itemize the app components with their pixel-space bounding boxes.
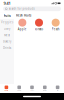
button[interactable]: Me	[51, 85, 64, 91]
button[interactable]: Bakery	[0, 38, 14, 45]
staticText: Deals	[43, 90, 47, 91]
staticText: Fresh Fruits	[16, 14, 31, 17]
button[interactable]: Veggies	[0, 19, 14, 25]
staticText: Fruits	[3, 14, 10, 18]
staticText: Me	[57, 90, 59, 91]
button[interactable]: Deals	[38, 85, 51, 91]
button[interactable]: Cart	[26, 85, 38, 91]
staticText: Peach	[52, 27, 60, 31]
button[interactable]: Search for products	[0, 6, 64, 11]
staticText: Dairy	[4, 27, 10, 30]
button[interactable]: Drinks	[0, 45, 14, 51]
button[interactable]: Fruits	[0, 13, 14, 19]
button[interactable]: Dairy	[0, 25, 14, 32]
button[interactable]: Shop	[13, 85, 26, 91]
staticText: Bakery	[3, 40, 11, 43]
button[interactable]: Apple	[14, 19, 31, 31]
button[interactable]: Peach	[47, 19, 64, 31]
staticText: Tomato	[34, 27, 43, 31]
button[interactable]: Meat	[0, 32, 14, 38]
staticText: 9:41	[3, 1, 10, 6]
staticText: Cart	[30, 90, 33, 91]
staticText: Drinks	[3, 46, 11, 50]
staticText: Veggies	[1, 20, 13, 24]
staticText: Shop	[17, 90, 21, 91]
button[interactable]: Tomato	[31, 19, 47, 31]
staticText: Apple	[18, 27, 27, 31]
staticText: Search for products	[9, 7, 35, 10]
staticText: Home	[4, 90, 8, 91]
button[interactable]: Home	[0, 85, 13, 91]
staticText: Meat	[4, 33, 10, 37]
